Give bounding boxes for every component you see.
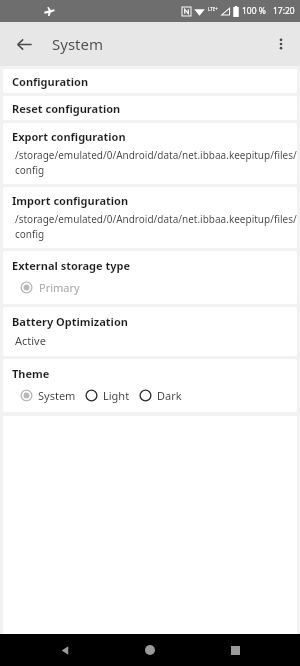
staticText: /storage/emulated/0/Android/data/net.ibb…: [15, 212, 297, 226]
staticText: Primary: [39, 280, 80, 295]
staticText: Configuration: [12, 74, 89, 89]
button[interactable]: Primary: [20, 280, 80, 295]
button[interactable]: Battery Optimization: [3, 307, 297, 356]
button[interactable]: Light: [85, 388, 130, 403]
button[interactable]: Back: [45, 634, 85, 666]
staticText: LTE+: [208, 6, 218, 12]
button[interactable]: Home: [130, 634, 170, 666]
button[interactable]: Theme: [3, 359, 297, 412]
staticText: System: [38, 388, 76, 403]
button[interactable]: Reset configuration: [3, 96, 297, 120]
staticText: Export configuration: [12, 129, 126, 144]
button[interactable]: Back: [8, 28, 40, 60]
staticText: Reset configuration: [12, 101, 121, 116]
staticText: Active: [15, 333, 46, 348]
staticText: Import configuration: [12, 193, 129, 208]
button[interactable]: More options: [265, 28, 297, 60]
staticText: Theme: [12, 366, 50, 381]
button[interactable]: System: [20, 388, 76, 403]
staticText: config: [15, 163, 45, 177]
button[interactable]: Export configuration: [3, 123, 297, 184]
staticText: 100 %: [242, 5, 266, 17]
button[interactable]: Recents: [215, 634, 255, 666]
staticText: System: [52, 34, 103, 54]
staticText: /storage/emulated/0/Android/data/net.ibb…: [15, 148, 297, 162]
button[interactable]: Import configuration: [3, 187, 297, 248]
staticText: 17:20: [273, 5, 295, 17]
button[interactable]: Dark: [139, 388, 182, 403]
staticText: Light: [103, 388, 130, 403]
staticText: Dark: [157, 388, 182, 403]
staticText: Battery Optimization: [12, 314, 128, 329]
button[interactable]: Configuration: [3, 69, 297, 93]
button[interactable]: External storage type: [3, 251, 297, 304]
staticText: config: [15, 227, 45, 241]
staticText: External storage type: [12, 258, 131, 273]
